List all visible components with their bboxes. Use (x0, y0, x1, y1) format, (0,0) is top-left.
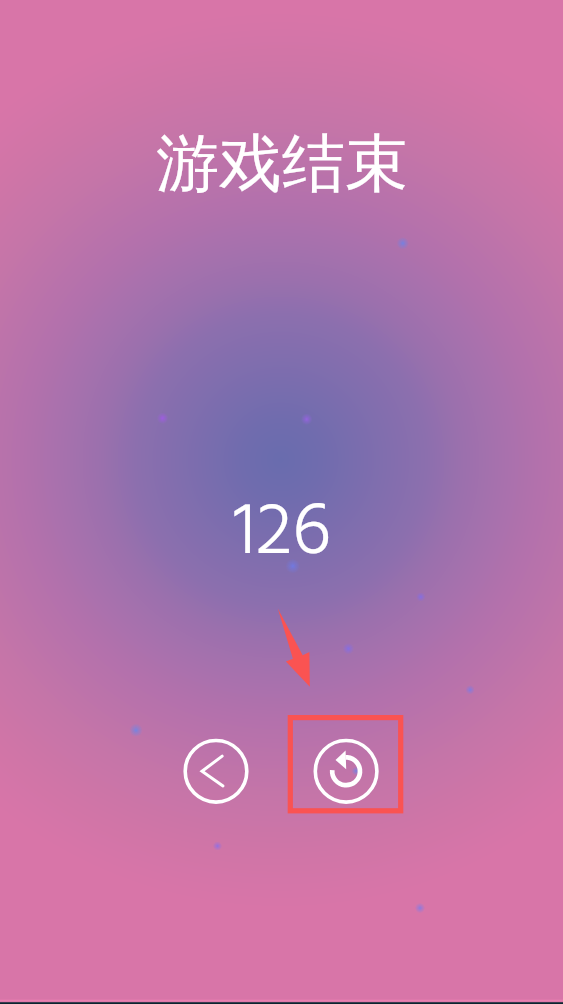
button[interactable]: Restart (312, 737, 380, 805)
staticText: 126 (233, 475, 331, 593)
button[interactable]: Back (182, 737, 250, 805)
staticText: 游戏结束 (156, 124, 408, 203)
